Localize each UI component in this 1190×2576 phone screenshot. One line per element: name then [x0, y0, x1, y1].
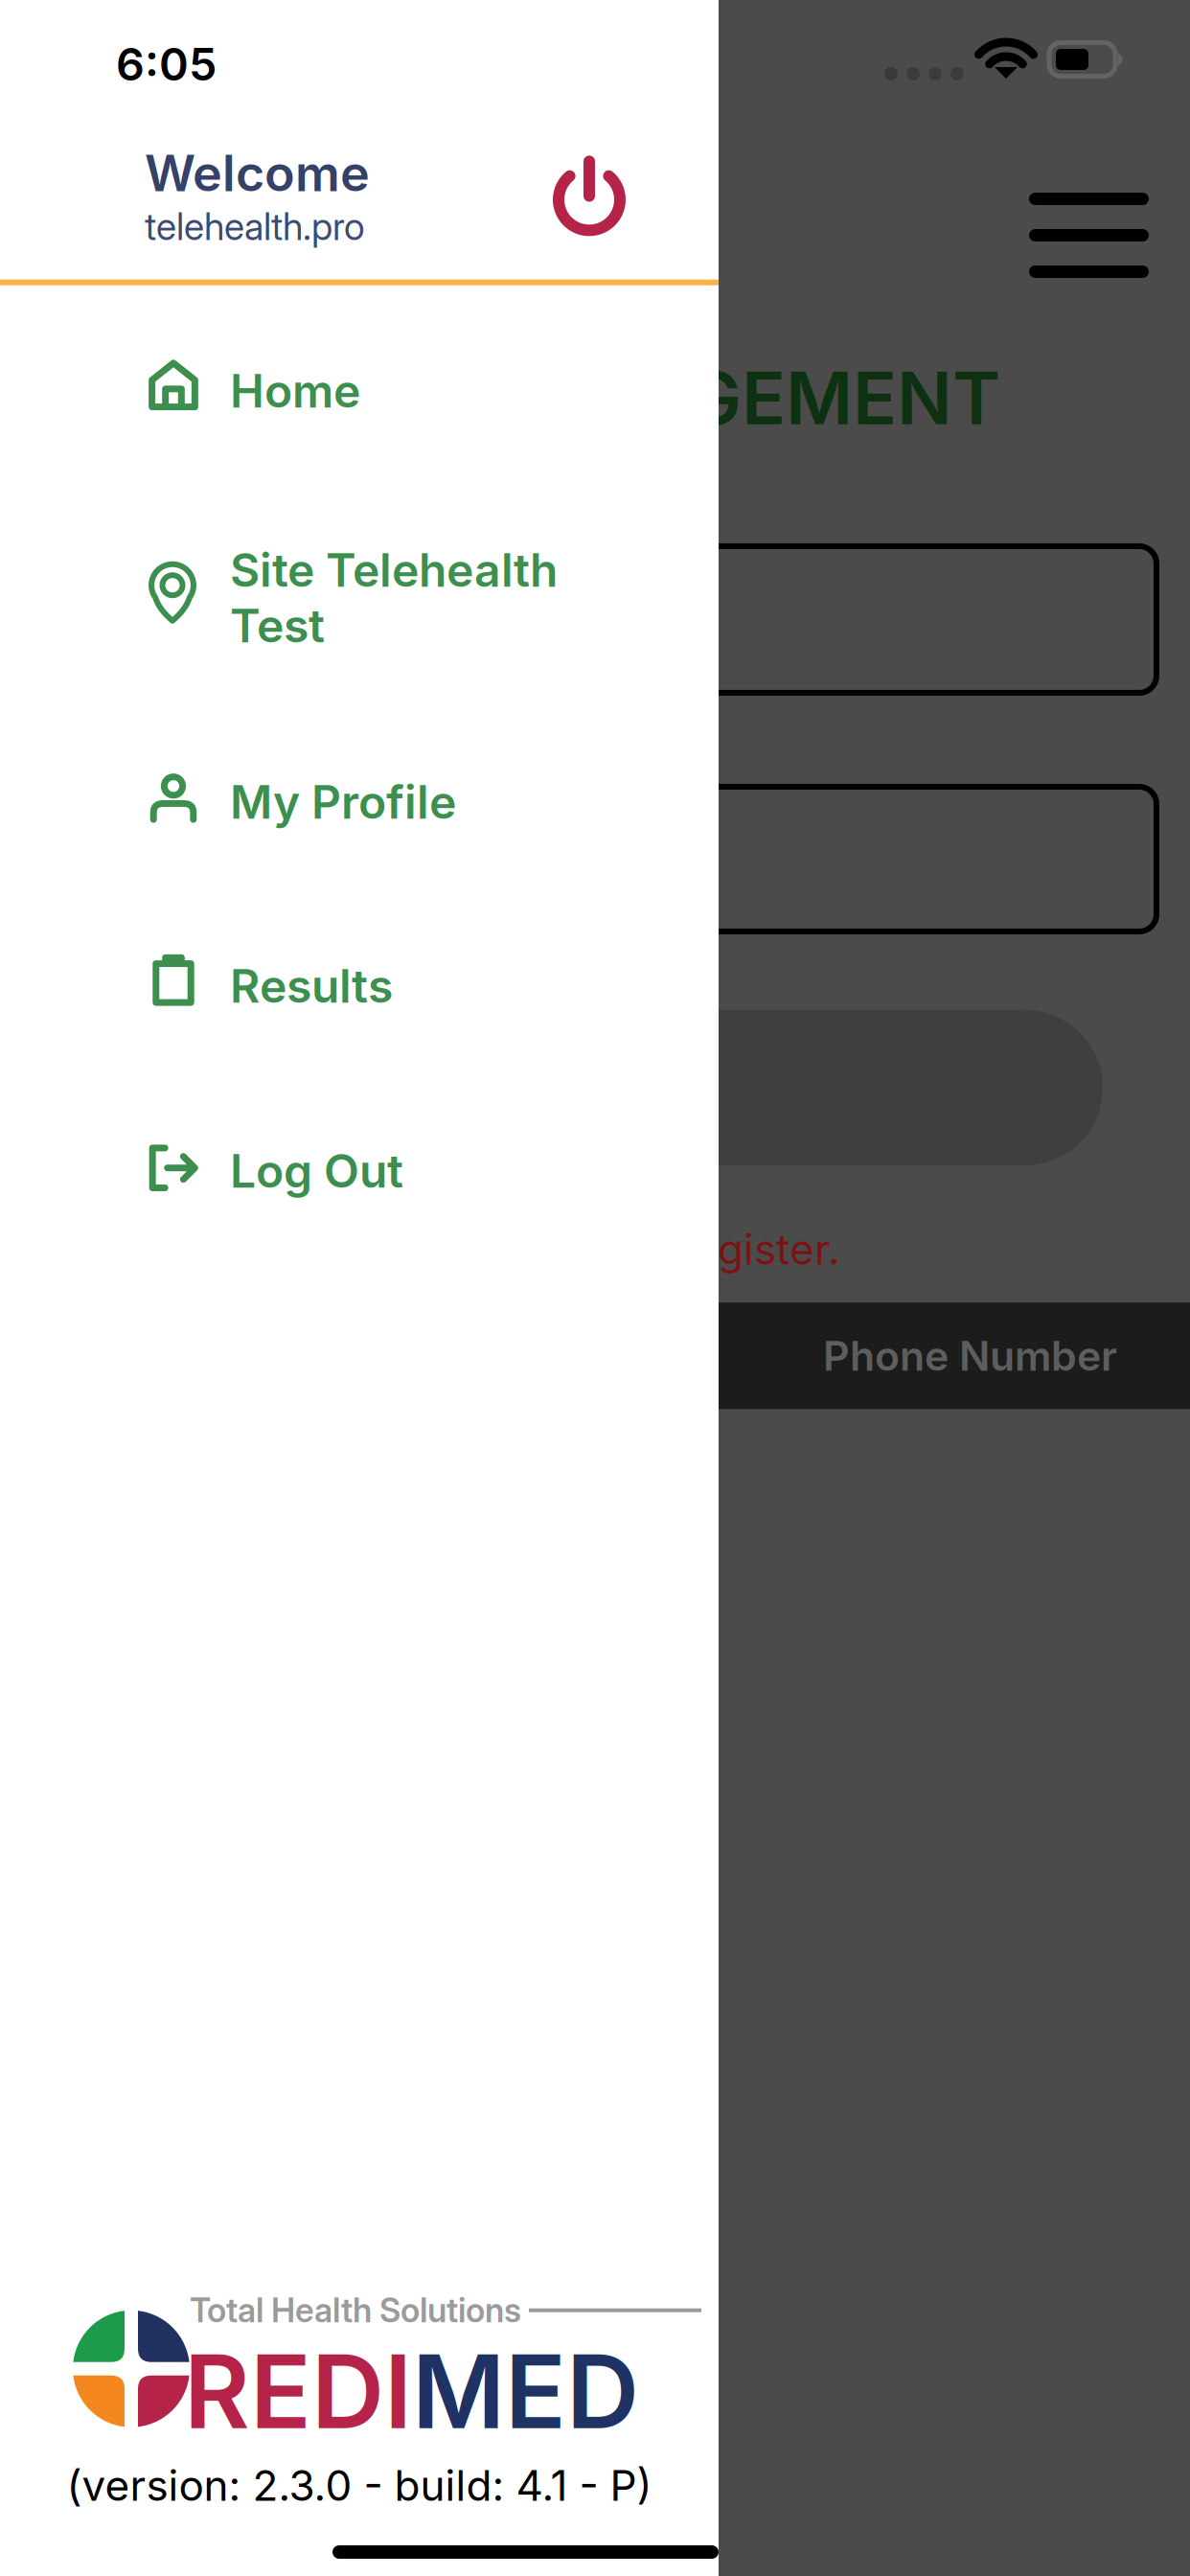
staticText: Welcome: [145, 143, 370, 203]
staticText: Total Health Solutions: [190, 2290, 521, 2330]
staticText: telehealth.pro: [145, 204, 365, 249]
staticText: My Profile: [230, 774, 456, 830]
staticText: Site Telehealth Test: [230, 542, 558, 653]
button[interactable]: Log Out: [0, 285, 719, 1244]
staticText: Results: [230, 958, 393, 1014]
button[interactable]: Results: [0, 285, 719, 1244]
button[interactable]: Home: [0, 285, 719, 1244]
staticText: REDI: [184, 2330, 412, 2453]
staticText: Phone Number: [823, 1331, 1117, 1380]
staticText: PATIENT MANAGEMENT: [140, 354, 1000, 442]
staticText: MED: [412, 2330, 639, 2453]
staticText: 6:05: [116, 37, 217, 91]
staticText: Log Out: [230, 1143, 403, 1199]
staticText: All fields are required to register.: [191, 1224, 840, 1275]
staticText: Home: [230, 363, 360, 419]
button[interactable]: My Profile: [0, 285, 719, 1244]
button[interactable]: Menu: [1029, 193, 1190, 278]
button[interactable]: Site Telehealth Test: [0, 285, 719, 1244]
button[interactable]: Power / log out: [553, 156, 719, 236]
staticText: (version: 2.3.0 - build: 4.1 - P): [67, 2460, 652, 2511]
